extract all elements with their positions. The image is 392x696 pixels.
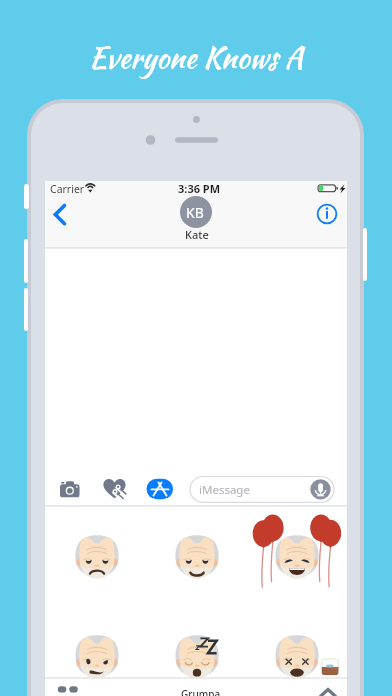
- staticText: Grumpa: [181, 687, 221, 696]
- button[interactable]: Back: [48, 200, 76, 228]
- button[interactable]: Dictate: [311, 479, 331, 499]
- button[interactable]: iMessage text field: [190, 476, 335, 502]
- staticText: KB: [186, 203, 204, 222]
- staticText: Kate: [185, 227, 209, 242]
- staticText: iMessage: [199, 482, 250, 498]
- staticText: Carrier: [50, 182, 85, 196]
- button[interactable]: Details: [314, 201, 340, 227]
- staticText: Everyone Knows A: [0, 37, 392, 79]
- button[interactable]: App Store: [146, 478, 174, 500]
- staticText: 3:36 PM: [178, 181, 221, 196]
- button[interactable]: Camera: [56, 476, 84, 502]
- button[interactable]: Digital Touch: [100, 476, 130, 502]
